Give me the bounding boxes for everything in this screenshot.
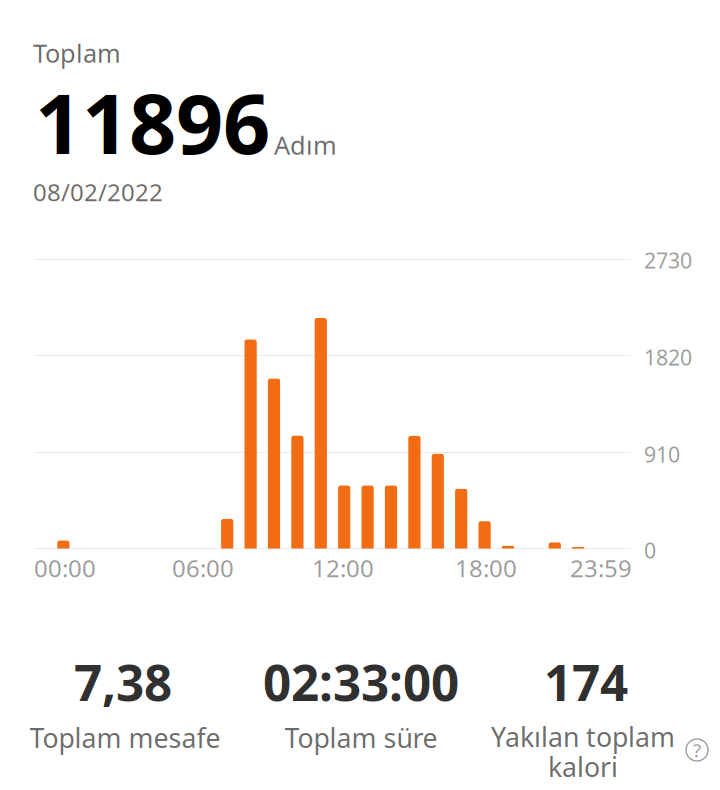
staticText: kalori (548, 749, 618, 784)
staticText: 00:00 (34, 552, 96, 584)
staticText: 02:33:00 (263, 649, 459, 714)
staticText: 7,38 (74, 649, 172, 714)
staticText: ? (693, 738, 701, 762)
staticText: Adım (274, 128, 337, 162)
staticText: 06:00 (172, 552, 234, 584)
staticText: 2730 (644, 246, 692, 274)
staticText: 11896 (35, 67, 270, 177)
staticText: Yakılan toplam (491, 719, 675, 754)
staticText: 12:00 (312, 552, 374, 584)
staticText: Toplam (33, 36, 121, 70)
staticText: 18:00 (455, 552, 517, 584)
staticText: 910 (644, 440, 680, 468)
button[interactable]: Yardım (680, 733, 714, 767)
staticText: 174 (544, 649, 628, 714)
staticText: 08/02/2022 (33, 176, 163, 208)
staticText: Toplam süre (284, 720, 437, 755)
staticText: Toplam mesafe (29, 720, 220, 755)
staticText: 0 (644, 536, 656, 564)
staticText: 23:59 (570, 552, 632, 584)
staticText: 1820 (644, 343, 692, 371)
